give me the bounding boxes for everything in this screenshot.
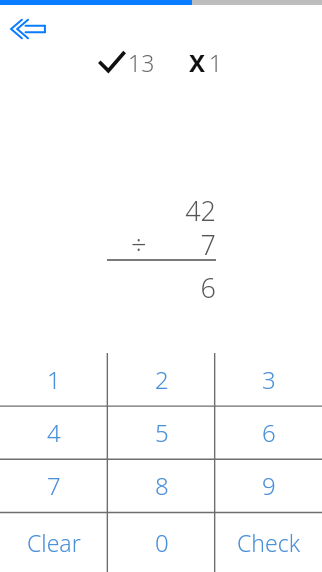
button[interactable]: Clear [0,512,108,572]
staticText: 9 [262,469,276,502]
button[interactable]: 2 [108,353,215,406]
button[interactable]: 1 [0,353,108,406]
button[interactable]: 9 [215,459,322,512]
button[interactable]: 8 [108,459,215,512]
staticText: Clear [27,527,81,558]
staticText: 4 [47,416,61,449]
button[interactable]: 4 [0,406,108,459]
button[interactable]: 6 [215,406,322,459]
button[interactable]: 5 [108,406,215,459]
staticText: 1 [47,363,61,396]
staticText: 2 [155,363,169,396]
button[interactable]: Check [215,512,322,572]
staticText: Check [237,527,301,558]
staticText: 6 [262,416,276,449]
staticText: X [189,46,206,79]
staticText: 7 [106,226,216,263]
staticText: ÷ [131,226,147,263]
button[interactable]: 3 [215,353,322,406]
staticText: 6 [106,269,216,306]
staticText: 0 [155,526,169,559]
button[interactable]: Back [5,12,51,46]
staticText: 5 [155,416,169,449]
staticText: 3 [262,363,276,396]
staticText: 7 [47,469,61,502]
staticText: 1 [209,47,223,78]
staticText: 13 [128,47,155,78]
staticText: 42 [106,192,216,229]
button[interactable]: 0 [108,512,215,572]
staticText: 8 [155,469,169,502]
button[interactable]: 7 [0,459,108,512]
